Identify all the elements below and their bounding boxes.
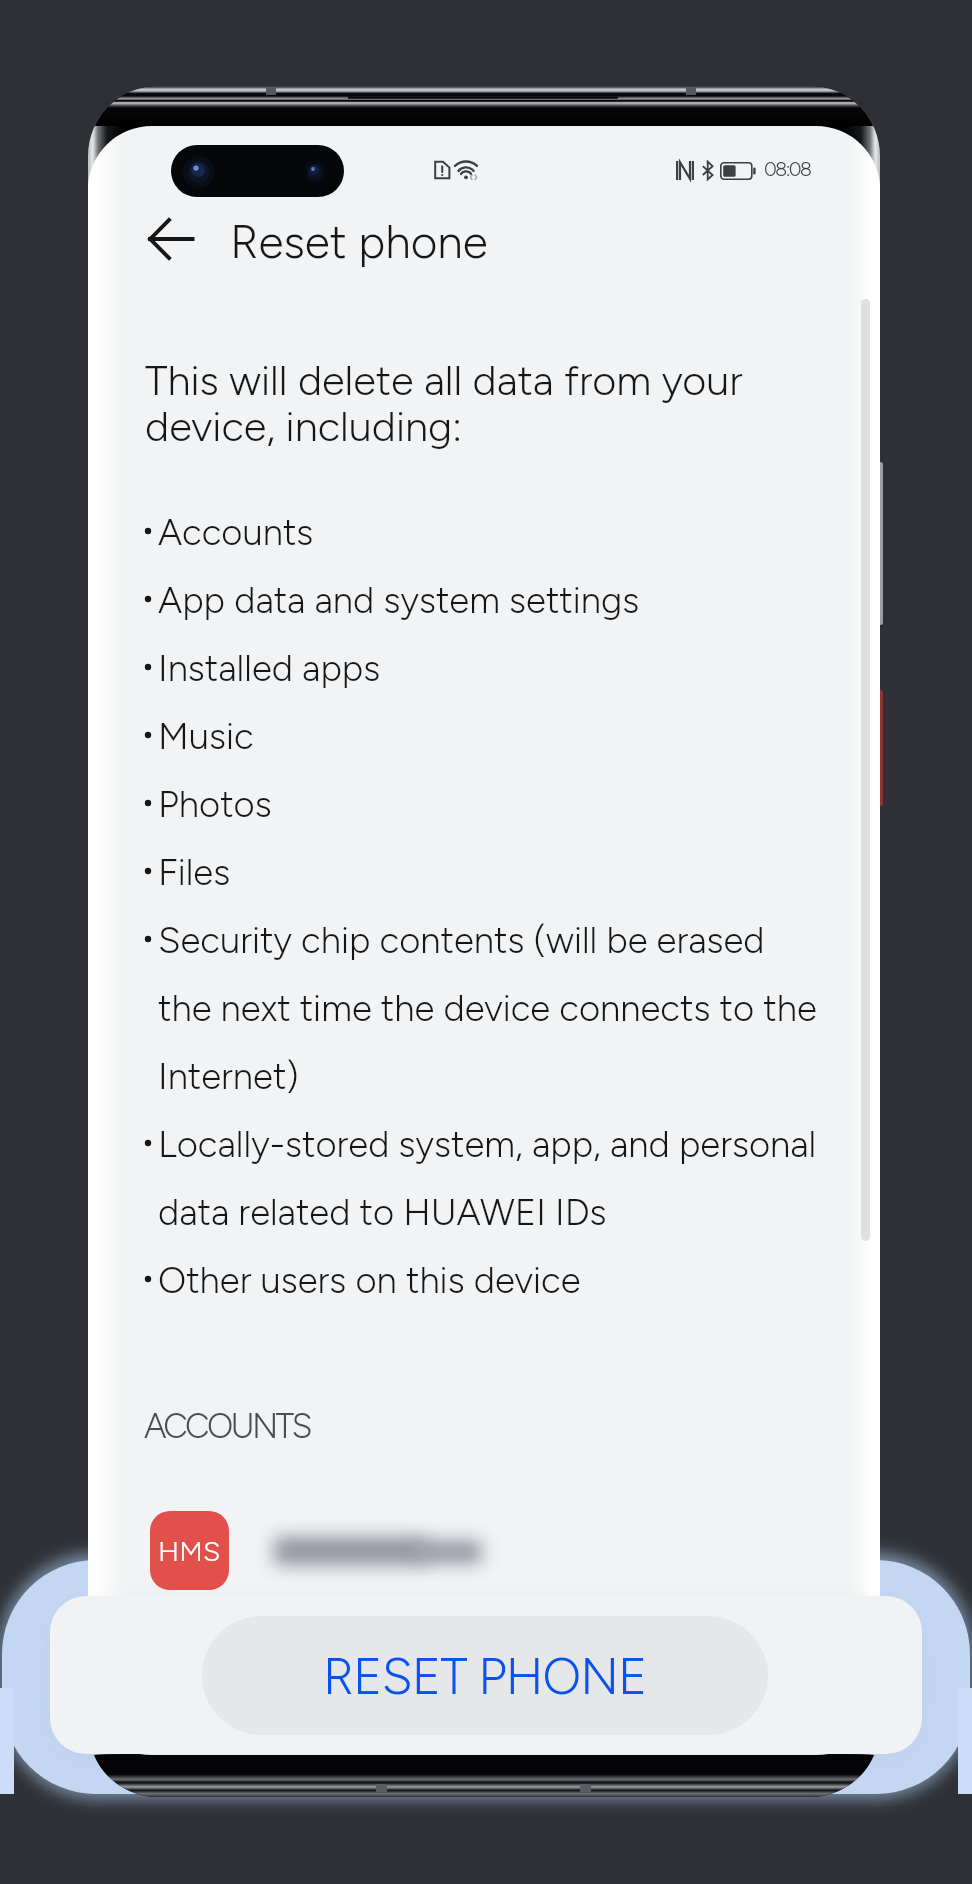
staticText: Internet)	[158, 1054, 299, 1098]
staticText: Photos	[158, 782, 272, 826]
staticText: This will delete all data from your devi…	[145, 356, 743, 452]
staticText: Installed apps	[158, 646, 381, 690]
staticText: Security chip contents (will be erased	[158, 918, 765, 962]
staticText: Music	[158, 714, 254, 758]
staticText: HMS	[158, 1534, 221, 1568]
staticText: 08:08	[764, 157, 811, 181]
staticText: the next time the device connects to the	[158, 986, 817, 1030]
staticText: Reset phone	[230, 214, 488, 269]
staticText: RESET PHONE	[323, 1646, 647, 1706]
staticText: data related to HUAWEI IDs	[158, 1190, 607, 1234]
staticText: Accounts	[158, 510, 314, 554]
button[interactable]: RESET PHONE	[202, 1616, 768, 1735]
button[interactable]: HMS	[120, 1494, 820, 1606]
staticText: App data and system settings	[158, 578, 640, 622]
staticText: Files	[158, 850, 231, 894]
staticText: ACCOUNTS	[144, 1406, 310, 1447]
button[interactable]: Back	[114, 205, 214, 305]
staticText: Locally-stored system, app, and personal	[158, 1122, 817, 1166]
staticText: Other users on this device	[158, 1258, 581, 1302]
